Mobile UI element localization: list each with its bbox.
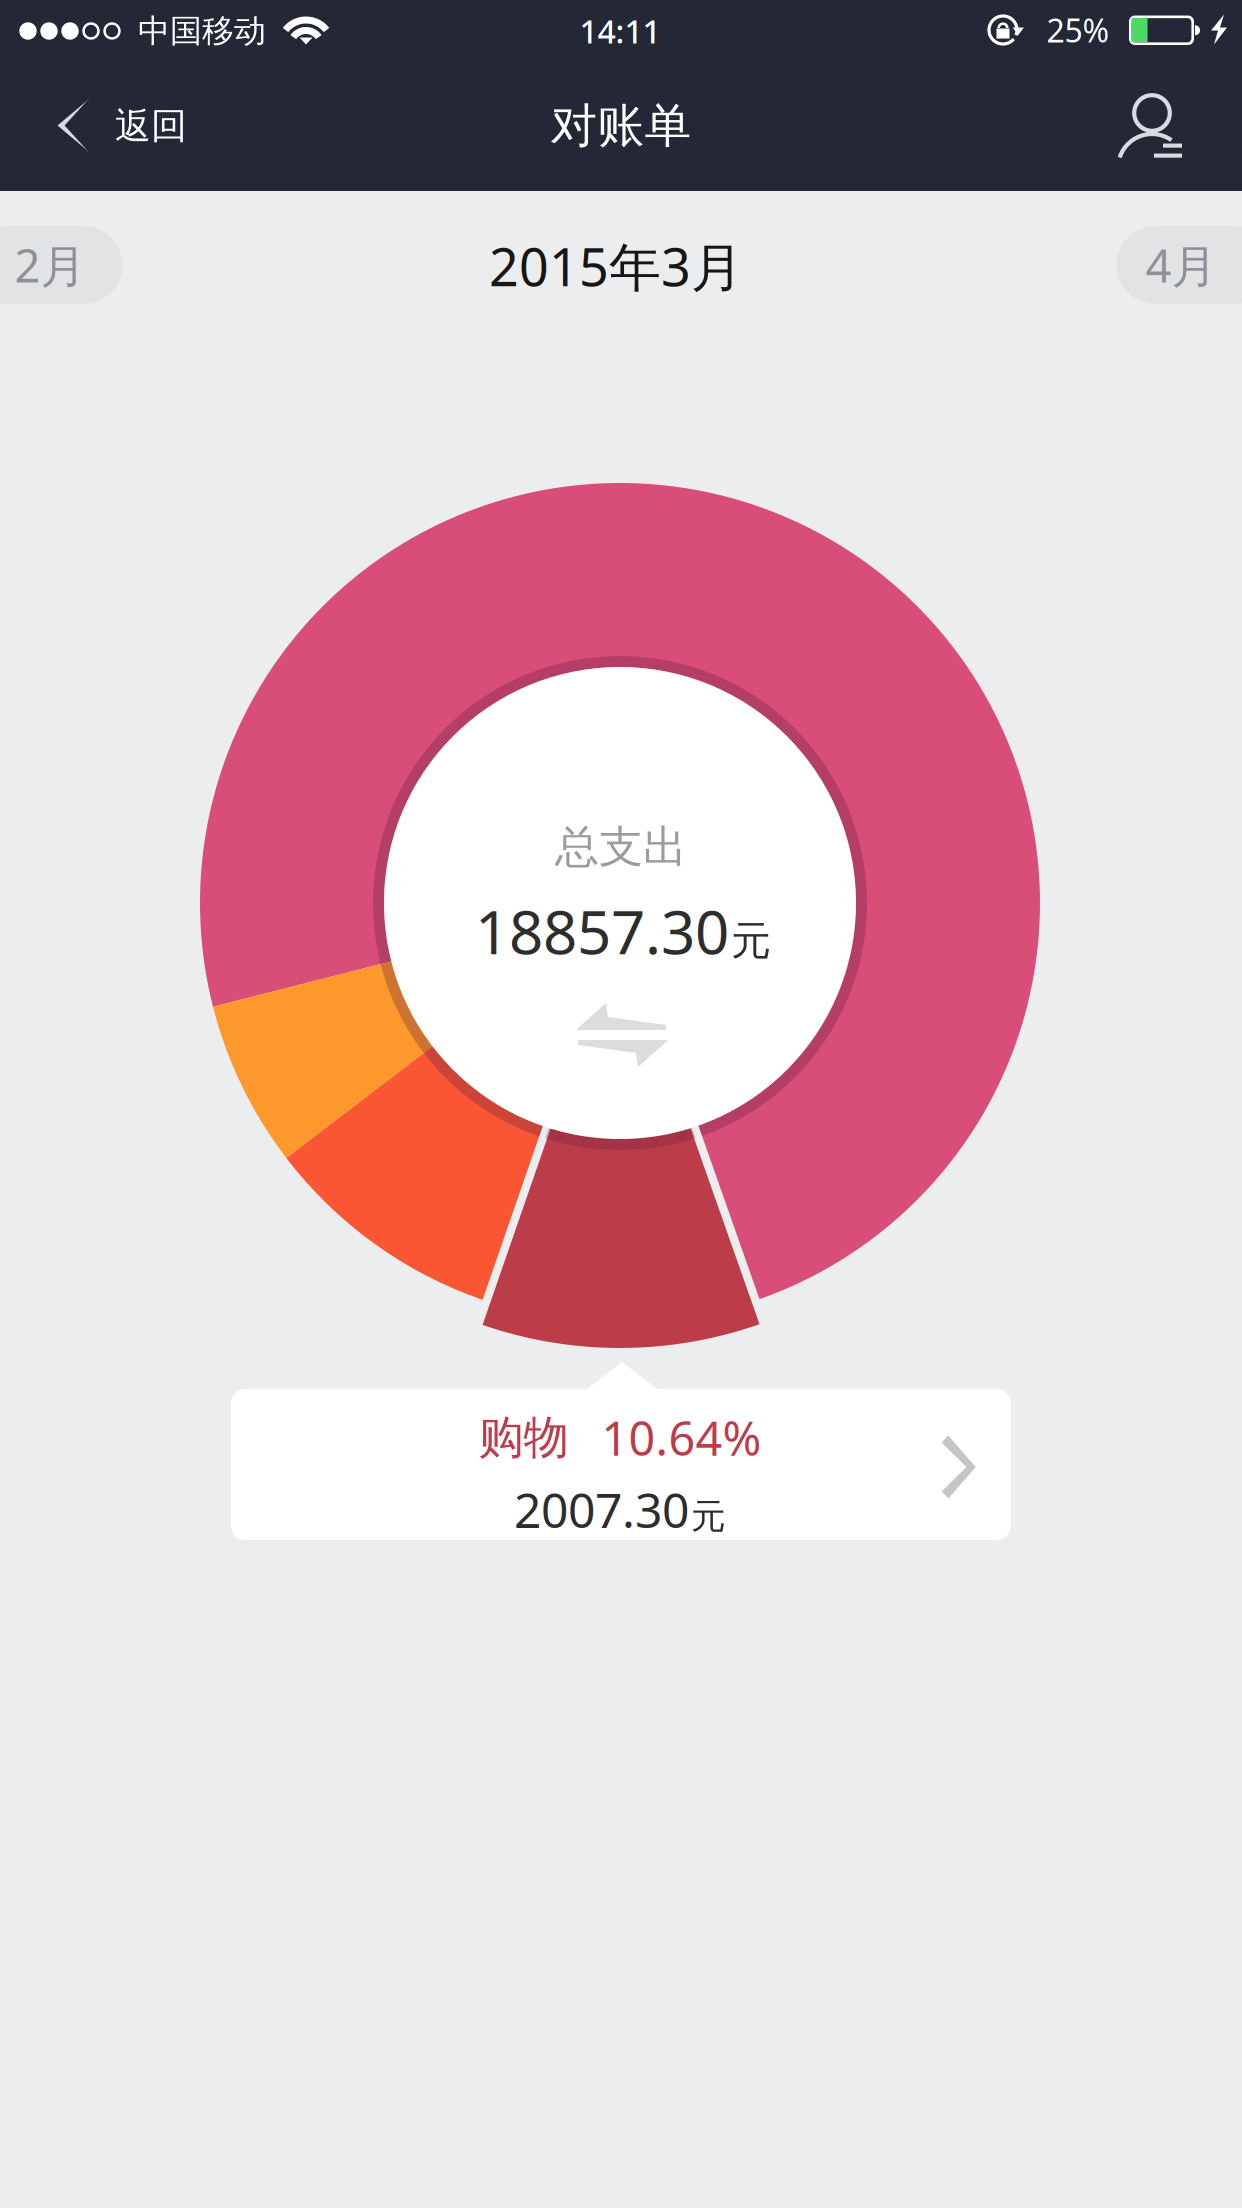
staticText: 返回	[115, 104, 187, 148]
staticText: 2015年3月	[489, 231, 743, 301]
button[interactable]: 2月	[0, 226, 122, 304]
staticText: 10.64%	[601, 1407, 761, 1469]
staticText: 25%	[1046, 9, 1109, 51]
button[interactable]: 4月	[1116, 226, 1242, 304]
staticText: 购物	[478, 1410, 568, 1465]
button[interactable]: 返回	[0, 60, 200, 191]
staticText: 14:11	[579, 10, 660, 52]
staticText: 2月	[14, 235, 85, 295]
staticText: 2007.30	[514, 1478, 689, 1541]
staticText: 对账单	[550, 97, 691, 155]
button[interactable]: Account	[1087, 60, 1217, 191]
staticText: 总支出	[555, 820, 687, 874]
staticText: 18857.30	[475, 891, 729, 971]
staticText: 元	[731, 916, 771, 965]
button[interactable]: 购物	[230, 1398, 1010, 1549]
staticText: 中国移动	[138, 11, 266, 51]
staticText: 4月	[1145, 235, 1216, 295]
staticText: 元	[691, 1495, 726, 1538]
